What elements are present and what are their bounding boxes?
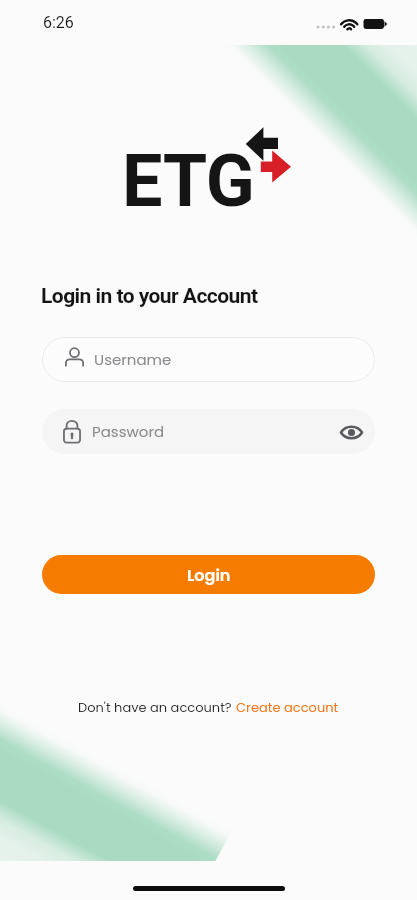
button[interactable]: Username: [42, 337, 375, 382]
staticText: Create account: [236, 698, 339, 716]
staticText: Password: [92, 421, 165, 442]
staticText: 6:26: [43, 13, 74, 32]
button[interactable]: Show password: [338, 419, 364, 445]
button[interactable]: Password: [42, 409, 375, 454]
button[interactable]: Login: [42, 555, 375, 594]
staticText: Login in to your Account: [41, 284, 258, 309]
staticText: Username: [94, 349, 172, 370]
staticText: Login: [187, 564, 231, 586]
staticText: ETG: [122, 139, 255, 223]
button[interactable]: Create account: [236, 698, 339, 716]
staticText: Don't have an account?: [78, 698, 236, 716]
